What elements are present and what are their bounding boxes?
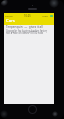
staticText: 10:25 [24,14,31,18]
staticText: Carrier [5,14,13,17]
button[interactable]: Home [28,105,37,114]
staticText: Tenpenquin — gives it all instant [6,25,52,29]
staticText: 100% [42,14,49,17]
button[interactable]: Cars [6,18,15,24]
staticText: Googglin for buying bodies faster, not a… [6,29,52,35]
